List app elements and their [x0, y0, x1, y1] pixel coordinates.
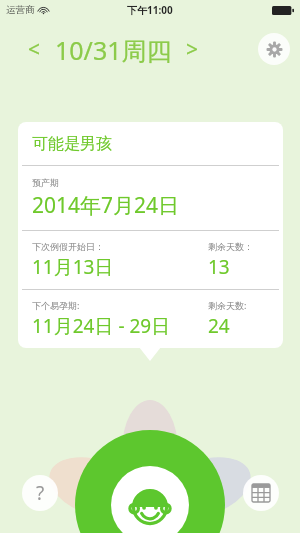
staticText: 10/31周四 [55, 33, 172, 67]
staticText: 13 [208, 254, 230, 280]
staticText: 可能是男孩 [32, 134, 112, 154]
button[interactable]: Calendar [243, 475, 279, 511]
staticText: 下次例假开始日： [32, 241, 104, 252]
staticText: 预产期 [32, 177, 59, 188]
staticText: 下个易孕期: [32, 299, 80, 311]
staticText: > [186, 35, 199, 64]
staticText: 11月24日 - 29日 [32, 313, 171, 339]
button[interactable]: Help [22, 475, 58, 511]
staticText: 剩余天数： [208, 241, 253, 252]
staticText: 11月13日 [32, 254, 114, 280]
button[interactable]: Settings [258, 33, 290, 65]
button[interactable]: Previous day [24, 31, 45, 68]
button[interactable]: Next day [182, 31, 203, 68]
staticText: 24 [208, 313, 230, 339]
staticText: ? [36, 480, 45, 506]
button[interactable]: 10/31周四 [55, 33, 172, 67]
staticText: < [28, 35, 41, 64]
button[interactable]: Baby [75, 430, 225, 533]
staticText: 剩余天数: [208, 299, 247, 311]
staticText: 2014年7月24日 [32, 191, 180, 220]
staticText: 运营商 [6, 4, 35, 16]
staticText: 下午11:00 [127, 3, 173, 17]
button[interactable] [18, 122, 283, 348]
